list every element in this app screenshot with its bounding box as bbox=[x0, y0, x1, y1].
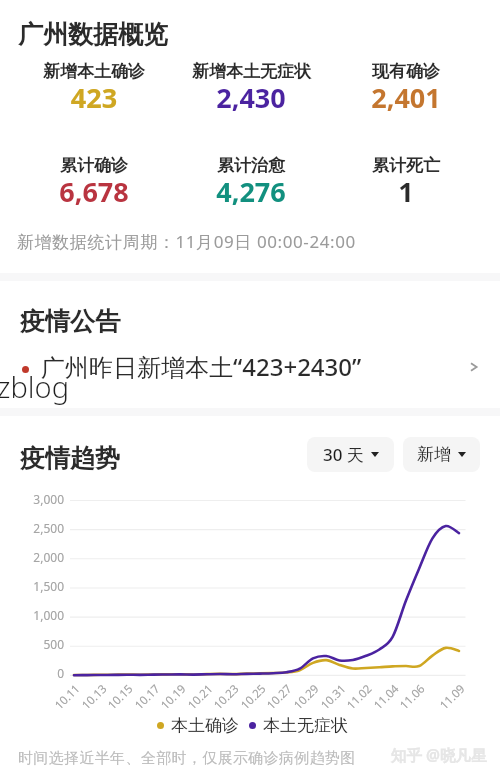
staticText: 累计死亡 bbox=[372, 155, 440, 176]
staticText: 4,276 bbox=[151, 173, 351, 210]
other: More announcements bbox=[468, 361, 480, 373]
staticText: 10.15 bbox=[97, 681, 136, 721]
button[interactable]: 累计治愈 bbox=[151, 155, 351, 213]
staticText: 30 天 bbox=[323, 443, 364, 466]
staticText: 广州昨日新增本土“423+2430” bbox=[41, 350, 362, 383]
staticText: 423 bbox=[0, 79, 194, 116]
staticText: 10.21 bbox=[177, 681, 216, 721]
staticText: 广州数据概览 bbox=[18, 19, 168, 50]
button[interactable]: 新增本土无症状 bbox=[151, 61, 351, 119]
staticText: 3,000 bbox=[4, 491, 64, 507]
staticText: 新增本土无症状 bbox=[192, 61, 311, 82]
staticText: 1,000 bbox=[4, 607, 64, 623]
staticText: 10.17 bbox=[124, 681, 163, 721]
staticText: 累计确诊 bbox=[60, 155, 128, 176]
staticText: 0 bbox=[4, 665, 64, 681]
staticText: 2,430 bbox=[151, 79, 351, 116]
button[interactable]: 广州昨日新增本土“423+2430” bbox=[0, 348, 500, 388]
staticText: 10.13 bbox=[71, 681, 110, 721]
staticText: 疫情趋势 bbox=[20, 443, 120, 474]
button[interactable]: 现有确诊 bbox=[306, 61, 500, 119]
button[interactable]: 新增 bbox=[403, 437, 480, 472]
staticText: 11.04 bbox=[363, 681, 402, 721]
staticText: 疫情公告 bbox=[20, 306, 120, 337]
staticText: 6,678 bbox=[0, 173, 194, 210]
staticText: 2,500 bbox=[4, 520, 64, 536]
staticText: 现有确诊 bbox=[372, 61, 440, 82]
button[interactable]: 新增本土确诊 bbox=[0, 61, 194, 119]
staticText: zblog bbox=[0, 367, 70, 406]
button[interactable]: 累计死亡 bbox=[306, 155, 500, 213]
staticText: 时间选择近半年、全部时，仅展示确诊病例趋势图 bbox=[18, 749, 356, 768]
staticText: 新增数据统计周期：11月09日 00:00-24:00 bbox=[17, 230, 356, 253]
staticText: 10.29 bbox=[283, 681, 322, 721]
button[interactable]: 累计确诊 bbox=[0, 155, 194, 213]
staticText: 10.23 bbox=[203, 681, 242, 721]
staticText: 1 bbox=[306, 173, 500, 210]
staticText: 2,000 bbox=[4, 549, 64, 565]
staticText: 10.11 bbox=[44, 681, 83, 721]
staticText: 10.27 bbox=[256, 681, 295, 721]
staticText: 2,401 bbox=[306, 79, 500, 116]
staticText: 知乎 @晓凡星 bbox=[391, 744, 487, 765]
staticText: 1,500 bbox=[4, 578, 64, 594]
staticText: 500 bbox=[4, 636, 64, 652]
staticText: 11.06 bbox=[389, 681, 428, 721]
staticText: 本土无症状 bbox=[263, 715, 348, 736]
staticText: 累计治愈 bbox=[217, 155, 285, 176]
staticText: 新增 bbox=[417, 444, 451, 465]
staticText: 10.25 bbox=[230, 681, 269, 721]
staticText: 11.02 bbox=[336, 681, 375, 721]
staticText: 10.31 bbox=[310, 681, 349, 721]
staticText: 本土确诊 bbox=[171, 715, 239, 736]
staticText: 11.09 bbox=[429, 681, 468, 721]
button[interactable]: 30 天 bbox=[307, 437, 394, 472]
staticText: 10.19 bbox=[150, 681, 189, 721]
staticText: 新增本土确诊 bbox=[43, 61, 145, 82]
